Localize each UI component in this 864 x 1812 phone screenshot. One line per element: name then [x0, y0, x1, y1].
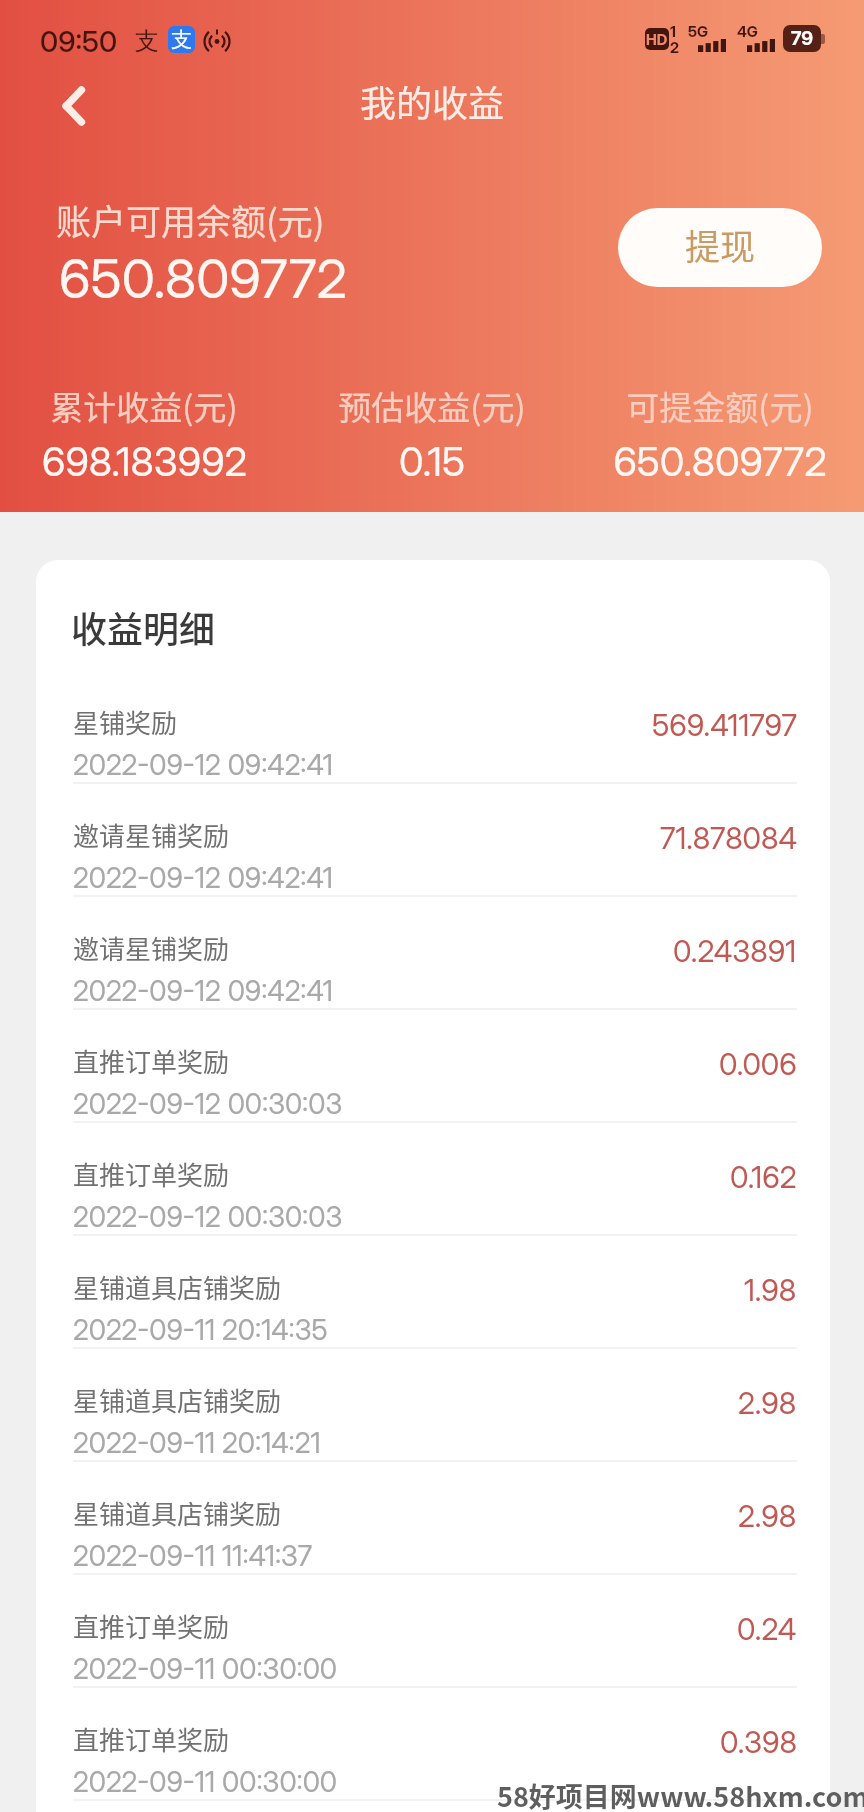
staticText: 我的收益 [360, 75, 505, 127]
staticText: 2022-09-11 20:14:21 [73, 1426, 321, 1460]
staticText: 2 [670, 38, 679, 56]
staticText: 0.006 [719, 1046, 797, 1082]
staticText: 2022-09-11 00:30:00 [73, 1652, 338, 1686]
button[interactable]: 星铺道具店铺奖励 [36, 1477, 830, 1590]
staticText: 星铺道具店铺奖励 [73, 1268, 282, 1306]
staticText: 0.162 [730, 1159, 797, 1195]
button[interactable]: 直推订单奖励 [36, 1703, 830, 1812]
staticText: 71.878084 [660, 820, 797, 856]
staticText: 提现 [685, 219, 756, 270]
button[interactable]: 星铺道具店铺奖励 [36, 1364, 830, 1477]
staticText: 0.398 [720, 1724, 797, 1760]
staticText: 0.15 [399, 437, 465, 485]
staticText: 2.98 [738, 1385, 797, 1421]
staticText: 支 [171, 27, 192, 53]
staticText: 0.243891 [673, 933, 797, 969]
staticText: 2022-09-12 00:30:03 [73, 1087, 343, 1121]
staticText: 2022-09-11 11:41:37 [73, 1539, 313, 1573]
button[interactable]: 直推订单奖励 [36, 1138, 830, 1251]
staticText: 邀请星铺奖励 [73, 816, 230, 854]
staticText: 累计收益(元) [50, 382, 238, 430]
staticText: 账户可用余额(元) [56, 194, 325, 245]
staticText: 650.809772 [59, 246, 347, 311]
staticText: 直推订单奖励 [73, 1607, 230, 1645]
staticText: 2022-09-11 20:14:35 [73, 1313, 328, 1347]
staticText: 直推订单奖励 [73, 1155, 230, 1193]
staticText: 收益明细 [71, 601, 216, 653]
staticText: 直推订单奖励 [73, 1042, 230, 1080]
staticText: HD [646, 30, 668, 48]
staticText: 569.411797 [652, 707, 797, 743]
staticText: 58好项目网www.58hxm.com [497, 1776, 864, 1812]
staticText: 邀请星铺奖励 [73, 929, 230, 967]
staticText: 2.98 [738, 1498, 797, 1534]
staticText: 1 [670, 22, 676, 40]
staticText: 预估收益(元) [338, 382, 526, 430]
staticText: 5G [688, 22, 709, 40]
staticText: 支 [135, 26, 159, 56]
staticText: 直推订单奖励 [73, 1720, 230, 1758]
staticText: 0.24 [737, 1611, 797, 1647]
staticText: 星铺道具店铺奖励 [73, 1381, 282, 1419]
button[interactable]: 邀请星铺奖励 [36, 799, 830, 912]
button[interactable]: Back [46, 77, 104, 135]
button[interactable]: 邀请星铺奖励 [36, 912, 830, 1025]
staticText: 星铺奖励 [73, 703, 178, 741]
staticText: 1.98 [744, 1272, 797, 1308]
staticText: 650.809772 [613, 437, 827, 485]
staticText: 2022-09-12 09:42:41 [73, 974, 333, 1008]
staticText: 2022-09-12 09:42:41 [73, 748, 333, 782]
button[interactable]: 提现 [618, 208, 822, 287]
staticText: 2022-09-11 00:30:00 [73, 1765, 338, 1799]
staticText: 79 [791, 27, 813, 50]
staticText: 2022-09-12 09:42:41 [73, 861, 333, 895]
staticText: 2022-09-12 00:30:03 [73, 1200, 343, 1234]
staticText: 698.183992 [42, 437, 247, 485]
staticText: 09:50 [40, 24, 118, 59]
button[interactable]: 星铺道具店铺奖励 [36, 1251, 830, 1364]
staticText: 4G [737, 22, 758, 40]
staticText: 可提金额(元) [626, 382, 814, 430]
button[interactable]: 直推订单奖励 [36, 1590, 830, 1703]
staticText: 星铺道具店铺奖励 [73, 1494, 282, 1532]
button[interactable]: 直推订单奖励 [36, 1025, 830, 1138]
button[interactable]: 星铺奖励 [36, 686, 830, 799]
